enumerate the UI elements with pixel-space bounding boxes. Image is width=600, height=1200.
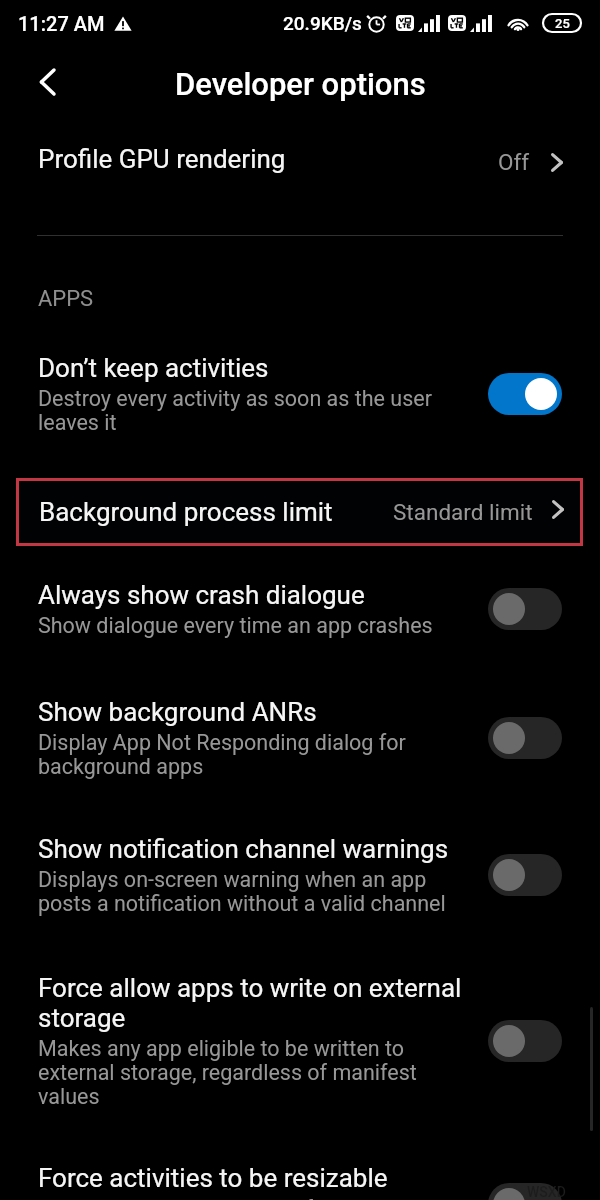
staticText: Force activities to be resizable <box>38 1163 388 1193</box>
button[interactable] <box>488 588 562 630</box>
button[interactable]: Force allow apps to write on external st… <box>0 973 600 1109</box>
staticText: Makes any app eligible to be written to … <box>38 1037 417 1109</box>
button[interactable]: Show background ANRs <box>0 697 600 779</box>
button[interactable] <box>488 717 562 759</box>
button[interactable]: Force activities to be resizable <box>0 1163 600 1200</box>
staticText: Always show crash dialogue <box>38 580 365 610</box>
staticText: Show background ANRs <box>38 697 317 727</box>
staticText: Display App Not Responding dialog for ba… <box>38 731 406 779</box>
staticText: Make all activities resizable for multi-… <box>38 1197 469 1200</box>
staticText: Background process limit <box>39 497 393 527</box>
staticText: Show notification channel warnings <box>38 834 449 864</box>
button[interactable] <box>488 1183 562 1200</box>
staticText: 11:27 AM <box>18 12 105 35</box>
staticText: 20.9KB/s <box>283 12 362 34</box>
button[interactable]: Background process limit <box>16 478 583 546</box>
staticText: 25 <box>555 16 570 31</box>
staticText: Displays on-screen warning when an app p… <box>38 868 446 916</box>
button[interactable] <box>488 1020 562 1062</box>
staticText: Off <box>498 149 530 175</box>
staticText: Profile GPU rendering <box>38 144 498 174</box>
button[interactable]: Profile GPU rendering <box>0 144 600 174</box>
button[interactable]: Don’t keep activities <box>0 353 600 435</box>
staticText: Developer options <box>175 66 426 102</box>
button[interactable] <box>488 373 562 415</box>
staticText: Destroy every activity as soon as the us… <box>38 387 432 435</box>
staticText: APPS <box>38 286 94 312</box>
staticText: Standard limit <box>393 499 533 525</box>
button[interactable]: Show notification channel warnings <box>0 834 600 916</box>
button[interactable]: Always show crash dialogue <box>0 580 600 638</box>
button[interactable]: Back <box>24 58 72 106</box>
staticText: Show dialogue every time an app crashes <box>38 614 433 638</box>
staticText: Don’t keep activities <box>38 353 269 383</box>
button[interactable] <box>488 854 562 896</box>
staticText: WSXD <box>527 1184 566 1200</box>
staticText: Force allow apps to write on external st… <box>38 973 462 1033</box>
